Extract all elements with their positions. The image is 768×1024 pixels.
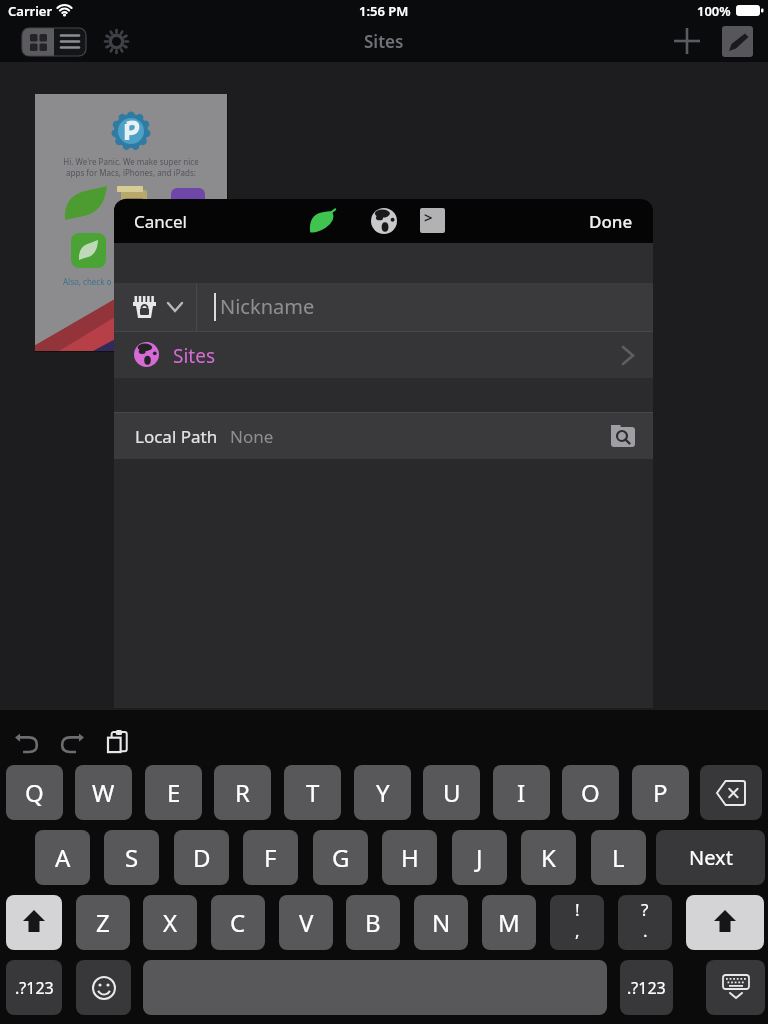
button[interactable] — [76, 960, 131, 1015]
staticText: U — [443, 776, 461, 809]
button[interactable] — [706, 960, 765, 1015]
button[interactable]: C — [211, 895, 265, 950]
button[interactable]: A — [35, 830, 90, 885]
button[interactable]: H — [382, 830, 437, 885]
button[interactable]: K — [521, 830, 576, 885]
button[interactable]: N — [414, 895, 468, 950]
button[interactable]: S — [104, 830, 159, 885]
button[interactable]: Nickname — [114, 283, 653, 331]
staticText: W — [92, 776, 115, 809]
button[interactable]: ! — [550, 895, 604, 950]
button[interactable] — [366, 203, 402, 239]
button[interactable]: R — [214, 765, 271, 820]
staticText: N — [432, 906, 451, 939]
staticText: 1:56 PM — [359, 2, 409, 20]
staticText: .?123 — [15, 977, 54, 999]
staticText: Nickname — [220, 293, 315, 320]
staticText: Y — [376, 776, 390, 809]
button[interactable]: ? — [618, 895, 672, 950]
button[interactable]: Next — [656, 830, 765, 885]
button[interactable]: Hi. We're Panic. We make super nice — [35, 94, 227, 351]
staticText: H — [401, 841, 419, 874]
staticText: ? — [641, 898, 649, 921]
button[interactable]: U — [423, 765, 480, 820]
button[interactable]: X — [143, 895, 197, 950]
button[interactable]: J — [452, 830, 507, 885]
button[interactable] — [722, 26, 753, 57]
button[interactable]: Sites — [114, 332, 653, 378]
button[interactable]: Local Path — [114, 413, 653, 458]
button[interactable] — [102, 728, 132, 756]
staticText: Carrier — [8, 2, 53, 20]
staticText: Next — [689, 844, 733, 871]
button[interactable]: .?123 — [6, 960, 62, 1015]
staticText: A — [55, 841, 71, 874]
button[interactable] — [304, 203, 340, 239]
staticText: Cancel — [134, 210, 187, 233]
button[interactable]: O — [562, 765, 619, 820]
button[interactable]: .?123 — [620, 960, 673, 1015]
button[interactable]: V — [279, 895, 333, 950]
button[interactable] — [686, 895, 764, 950]
staticText: F — [264, 841, 277, 874]
staticText: . — [643, 919, 648, 942]
button[interactable]: I — [493, 765, 550, 820]
button[interactable] — [103, 28, 130, 55]
staticText: apps for Macs, iPhones, and iPads: — [35, 167, 227, 178]
staticText: R — [235, 776, 250, 809]
button[interactable]: > — [420, 208, 445, 233]
button[interactable] — [143, 960, 607, 1015]
button[interactable]: E — [145, 765, 202, 820]
staticText: C — [230, 906, 246, 939]
staticText: O — [581, 776, 600, 809]
staticText: Hi. We're Panic. We make super nice — [35, 156, 227, 167]
staticText: Local Path — [135, 425, 218, 448]
button[interactable] — [672, 26, 702, 56]
button[interactable] — [10, 730, 42, 756]
staticText: J — [476, 841, 483, 874]
staticText: M — [498, 906, 520, 939]
button[interactable]: T — [284, 765, 341, 820]
button[interactable]: Q — [6, 765, 63, 820]
staticText: D — [193, 841, 211, 874]
staticText: S — [125, 841, 139, 874]
staticText: Also, check o — [63, 276, 112, 287]
staticText: Done — [589, 210, 633, 233]
button[interactable] — [22, 28, 86, 56]
button[interactable]: Z — [76, 895, 130, 950]
button[interactable]: G — [313, 830, 368, 885]
staticText: B — [365, 906, 381, 939]
staticText: P — [653, 776, 668, 809]
button[interactable]: Cancel — [122, 199, 212, 243]
staticText: .?123 — [627, 977, 666, 999]
staticText: I — [517, 776, 526, 809]
button[interactable]: P — [632, 765, 689, 820]
staticText: X — [163, 906, 178, 939]
button[interactable] — [6, 895, 62, 950]
button[interactable]: L — [591, 830, 646, 885]
button[interactable]: M — [482, 895, 536, 950]
staticText: 100% — [697, 2, 731, 20]
staticText: Sites — [173, 343, 216, 369]
button[interactable] — [609, 422, 637, 449]
button[interactable]: F — [243, 830, 298, 885]
button[interactable]: B — [346, 895, 400, 950]
staticText: Sites — [364, 30, 404, 53]
staticText: V — [299, 906, 314, 939]
staticText: Q — [25, 776, 44, 809]
staticText: G — [332, 841, 350, 874]
button[interactable]: D — [174, 830, 229, 885]
staticText: None — [230, 425, 274, 448]
button[interactable]: Y — [354, 765, 411, 820]
button[interactable] — [56, 730, 88, 756]
staticText: > — [424, 208, 433, 227]
staticText: T — [306, 776, 320, 809]
staticText: ! — [575, 898, 580, 921]
staticText: L — [612, 841, 625, 874]
button[interactable]: Done — [569, 199, 653, 243]
staticText: E — [167, 776, 181, 809]
button[interactable] — [700, 765, 762, 820]
staticText: Z — [96, 906, 110, 939]
button[interactable]: W — [75, 765, 132, 820]
staticText: K — [541, 841, 556, 874]
